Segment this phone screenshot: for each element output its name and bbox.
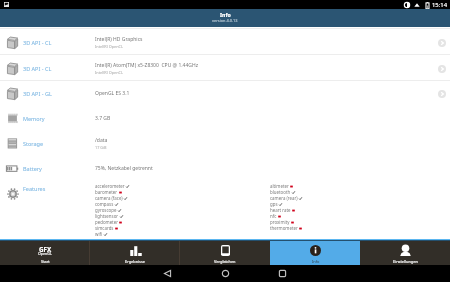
- button[interactable]: Battery: [0, 155, 450, 181]
- staticText: camera (rear): [270, 195, 298, 201]
- staticText: Start: [41, 259, 50, 264]
- staticText: simcards: [95, 225, 114, 231]
- button[interactable]: Info: [270, 241, 360, 265]
- staticText: proximity: [270, 219, 290, 225]
- staticText: Intel(R) Atom(TM) x5-Z8300 CPU @ 1.44GHz: [95, 62, 198, 69]
- staticText: Intel(R) OpenCL: [95, 70, 123, 75]
- staticText: 3D API - GL: [23, 90, 52, 97]
- staticText: Intel(R) OpenCL: [95, 44, 123, 49]
- button[interactable]: Einstellungen: [360, 241, 450, 265]
- staticText: altimeter: [270, 183, 289, 189]
- other: Home: [222, 270, 229, 277]
- staticText: OpenGL: [38, 251, 52, 256]
- staticText: Memory: [23, 115, 45, 122]
- staticText: 15:14: [432, 1, 448, 9]
- staticText: Storage: [23, 140, 44, 147]
- staticText: wifi: [95, 231, 103, 237]
- staticText: compass: [95, 201, 114, 207]
- staticText: version 4.0.13: [212, 18, 238, 23]
- staticText: /data: [95, 137, 108, 144]
- staticText: Ergebnisse: [125, 259, 146, 264]
- button[interactable]: GFX: [0, 241, 90, 265]
- button[interactable]: Features: [0, 180, 450, 238]
- staticText: Features: [23, 185, 46, 192]
- staticText: Einstellungen: [393, 259, 418, 264]
- staticText: OpenGL ES 3.1: [95, 90, 130, 97]
- staticText: Vergleichen: [214, 259, 236, 264]
- staticText: heart rate: [270, 207, 291, 213]
- other: Back: [164, 270, 171, 277]
- staticText: nfc: [270, 213, 277, 219]
- staticText: Intel(R) HD Graphics: [95, 36, 143, 43]
- staticText: 3D API - CL: [23, 65, 52, 72]
- staticText: lightsensor: [95, 213, 119, 219]
- staticText: 3.7 GB: [95, 115, 111, 122]
- staticText: pedometer: [95, 219, 118, 225]
- staticText: Info: [220, 11, 231, 18]
- staticText: thermometer: [270, 225, 298, 231]
- staticText: barometer: [95, 189, 118, 195]
- staticText: accelerometer: [95, 183, 125, 189]
- staticText: gyroscope: [95, 207, 117, 213]
- staticText: bluetooth: [270, 189, 291, 195]
- other: Recents: [279, 270, 286, 277]
- staticText: 17 GiB: [95, 145, 107, 150]
- staticText: GFX: [39, 245, 52, 254]
- button[interactable]: Storage: [0, 130, 450, 156]
- staticText: gps: [270, 201, 278, 207]
- button[interactable]: 3D API - CL: [0, 29, 450, 55]
- button[interactable]: Ergebnisse: [90, 241, 180, 265]
- staticText: Battery: [23, 165, 42, 172]
- button[interactable]: Vergleichen: [180, 241, 270, 265]
- staticText: Info: [312, 259, 320, 264]
- staticText: 3D API - CL: [23, 39, 52, 46]
- staticText: camera (face): [95, 195, 123, 201]
- staticText: 75%, Netzkabel getrennt: [95, 165, 153, 172]
- button[interactable]: 3D API - GL: [0, 80, 450, 106]
- button[interactable]: 3D API - CL: [0, 55, 450, 81]
- button[interactable]: Memory: [0, 105, 450, 131]
